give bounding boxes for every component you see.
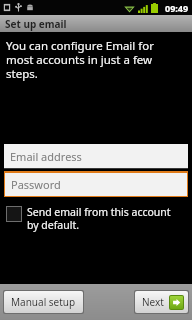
other: Next: [170, 296, 183, 309]
staticText: Manual setup: [11, 295, 76, 309]
button[interactable]: Send email from this account by default.: [6, 205, 184, 232]
staticText: Email address: [10, 149, 82, 164]
staticText: Password: [11, 177, 61, 192]
staticText: Set up email: [5, 17, 67, 31]
button[interactable]: Manual setup: [4, 291, 83, 313]
button[interactable]: Email address: [4, 144, 188, 169]
staticText: Send email from this account by default.: [27, 205, 184, 232]
staticText: You can configure Email for most account…: [6, 38, 184, 82]
button[interactable]: Next: [135, 291, 188, 313]
button[interactable]: Password: [5, 173, 187, 196]
staticText: Next: [142, 295, 164, 309]
staticText: 09:49: [165, 2, 189, 14]
